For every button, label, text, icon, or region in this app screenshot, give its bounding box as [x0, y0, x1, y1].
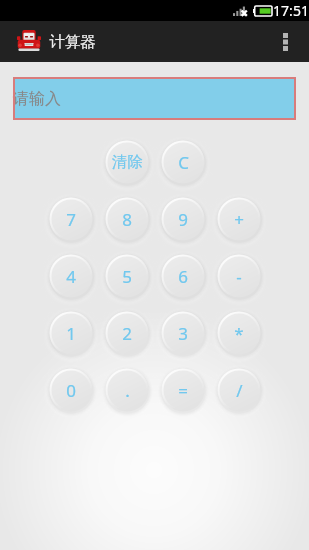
staticText: 0: [66, 379, 76, 402]
staticText: 清除: [112, 152, 143, 172]
staticText: 6: [178, 265, 188, 288]
staticText: 5: [122, 265, 132, 288]
button[interactable]: More options: [268, 21, 302, 62]
staticText: 7: [66, 208, 76, 231]
staticText: C: [178, 151, 189, 174]
button[interactable]: =: [157, 364, 209, 416]
staticText: 请输入: [13, 89, 61, 109]
staticText: 2: [122, 322, 132, 345]
button[interactable]: 5: [101, 250, 153, 302]
button[interactable]: 0: [45, 364, 97, 416]
button[interactable]: C: [157, 136, 209, 188]
staticText: =: [178, 379, 188, 402]
button[interactable]: 清除: [101, 136, 153, 188]
button[interactable]: 6: [157, 250, 209, 302]
staticText: 计算器: [49, 32, 96, 52]
staticText: 17:51: [273, 1, 309, 20]
staticText: 3: [178, 322, 188, 345]
staticText: -: [236, 265, 242, 288]
staticText: 8: [122, 208, 132, 231]
button[interactable]: -: [213, 250, 265, 302]
button[interactable]: 1: [45, 307, 97, 359]
button[interactable]: 请输入: [13, 77, 296, 120]
button[interactable]: 8: [101, 193, 153, 245]
staticText: +: [234, 208, 244, 231]
button[interactable]: *: [213, 307, 265, 359]
button[interactable]: .: [101, 364, 153, 416]
staticText: *: [234, 322, 244, 345]
button[interactable]: +: [213, 193, 265, 245]
staticText: /: [236, 379, 243, 402]
button[interactable]: 4: [45, 250, 97, 302]
staticText: 9: [178, 208, 188, 231]
button[interactable]: 2: [101, 307, 153, 359]
staticText: .: [125, 379, 130, 402]
staticText: 1: [66, 322, 76, 345]
button[interactable]: 3: [157, 307, 209, 359]
button[interactable]: 7: [45, 193, 97, 245]
staticText: 4: [66, 265, 76, 288]
button[interactable]: /: [213, 364, 265, 416]
button[interactable]: 9: [157, 193, 209, 245]
